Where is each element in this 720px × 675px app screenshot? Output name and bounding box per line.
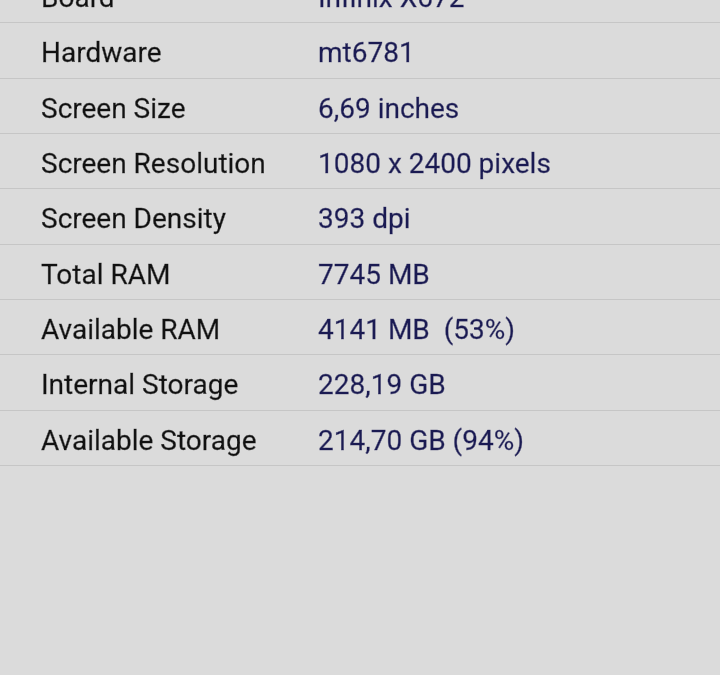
button[interactable]: Screen Size — [0, 78, 720, 133]
staticText: mt6781 — [318, 36, 415, 69]
staticText: Screen Size — [41, 92, 186, 125]
staticText: Internal Storage — [41, 368, 239, 401]
staticText: 214,70 GB (94%) — [318, 424, 524, 457]
button[interactable]: Screen Resolution — [0, 133, 720, 188]
staticText: 393 dpi — [318, 202, 411, 235]
staticText: Screen Density — [41, 202, 226, 235]
staticText: Screen Resolution — [41, 147, 266, 180]
staticText: 4141 MB (53%) — [318, 313, 515, 346]
staticText: Board — [41, 0, 115, 14]
staticText: Infinix X672 — [318, 0, 465, 14]
button[interactable]: Available Storage — [0, 410, 720, 465]
staticText: Board — [41, 0, 115, 14]
staticText: 6,69 inches — [318, 92, 460, 125]
staticText: mt6781 — [318, 36, 415, 69]
staticText: Hardware — [41, 36, 162, 69]
staticText: 214,70 GB (94%) — [318, 424, 524, 457]
staticText: Infinix X672 — [318, 0, 465, 14]
staticText: 4141 MB (53%) — [318, 313, 515, 346]
staticText: 228,19 GB — [318, 368, 446, 401]
staticText: Hardware — [41, 36, 162, 69]
button[interactable]: Screen Density — [0, 188, 720, 243]
button[interactable]: Internal Storage — [0, 354, 720, 409]
button[interactable]: Hardware — [0, 22, 720, 77]
staticText: 1080 x 2400 pixels — [318, 147, 551, 180]
button[interactable]: Available RAM — [0, 299, 720, 354]
staticText: 6,69 inches — [318, 92, 460, 125]
button[interactable]: Total RAM — [0, 244, 720, 299]
staticText: 7745 MB — [318, 258, 430, 291]
staticText: Available Storage — [41, 424, 257, 457]
staticText: Total RAM — [41, 258, 171, 291]
staticText: Screen Resolution — [41, 147, 266, 180]
staticText: Available RAM — [41, 313, 221, 346]
button[interactable]: Board — [0, 0, 720, 22]
staticText: 1080 x 2400 pixels — [318, 147, 551, 180]
staticText: Available Storage — [41, 424, 257, 457]
staticText: Total RAM — [41, 258, 171, 291]
staticText: 7745 MB — [318, 258, 430, 291]
staticText: Internal Storage — [41, 368, 239, 401]
staticText: 393 dpi — [318, 202, 411, 235]
staticText: Available RAM — [41, 313, 221, 346]
staticText: Screen Density — [41, 202, 226, 235]
staticText: Screen Size — [41, 92, 186, 125]
staticText: 228,19 GB — [318, 368, 446, 401]
